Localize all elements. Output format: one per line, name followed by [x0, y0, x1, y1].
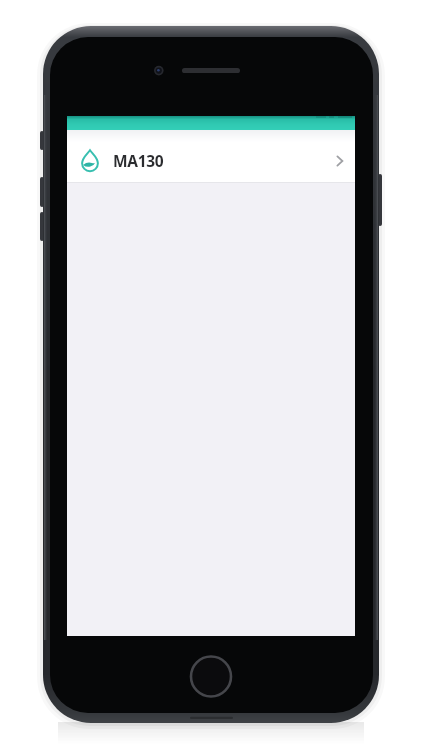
button[interactable]: MA130 — [67, 130, 355, 182]
staticText: MA130 — [113, 150, 164, 171]
